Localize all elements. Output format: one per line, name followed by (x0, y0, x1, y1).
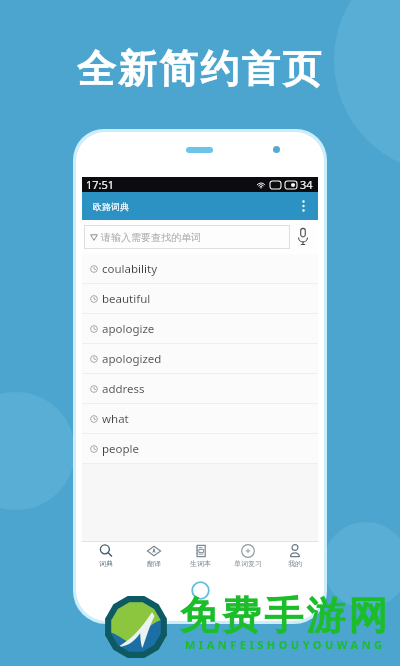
button[interactable]: 翻译 (130, 544, 177, 568)
button[interactable]: 单词复习 (224, 544, 271, 568)
button[interactable]: 词典 (82, 544, 130, 568)
staticText: beautiful (102, 291, 151, 307)
staticText: 我的 (288, 559, 302, 568)
staticText: what (102, 411, 129, 427)
button[interactable]: 欧路词典 (82, 192, 318, 220)
button[interactable]: people (82, 434, 318, 464)
button[interactable]: coulability (82, 254, 318, 284)
staticText: 免费手游网 (178, 591, 389, 640)
staticText: 单词复习 (234, 559, 262, 568)
button[interactable]: 请输入需要查找的单词 (84, 225, 290, 249)
staticText: 生词本 (190, 559, 211, 568)
button[interactable]: apologized (82, 344, 318, 374)
button[interactable]: apologize (82, 314, 318, 344)
staticText: 词典 (99, 559, 113, 568)
staticText: 34 (300, 177, 313, 192)
button[interactable]: beautiful (82, 284, 318, 314)
staticText: 欧路词典 (93, 201, 129, 212)
staticText: MIANFEISHOUYOUWANG (185, 637, 386, 652)
staticText: apologized (102, 351, 162, 367)
staticText: address (102, 381, 145, 397)
staticText: 全新简约首页 (77, 45, 324, 94)
button[interactable]: address (82, 374, 318, 404)
staticText: apologize (102, 321, 155, 337)
button[interactable]: 生词本 (177, 544, 224, 568)
staticText: 请输入需要查找的单词 (101, 231, 201, 244)
button[interactable]: More options (295, 198, 311, 214)
staticText: 17:51 (86, 177, 115, 192)
staticText: people (102, 441, 140, 457)
staticText: coulability (102, 261, 157, 277)
button[interactable]: what (82, 404, 318, 434)
staticText: 翻译 (147, 559, 161, 568)
button[interactable]: 我的 (271, 544, 318, 568)
button[interactable]: Voice search (293, 226, 313, 246)
